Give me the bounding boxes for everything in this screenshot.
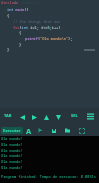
staticText: } bbox=[7, 47, 10, 52]
staticText: int main() bbox=[7, 7, 29, 12]
staticText: Executar bbox=[3, 128, 21, 133]
staticText: Ola mundo! bbox=[1, 136, 23, 141]
button[interactable]: Font size bbox=[23, 125, 34, 136]
button[interactable]: Executar bbox=[1, 127, 23, 134]
staticText: TAB bbox=[4, 113, 12, 118]
staticText: { bbox=[19, 30, 22, 35]
button[interactable]: TAB bbox=[2, 111, 14, 120]
staticText: } bbox=[19, 42, 22, 47]
staticText: Program finished. Tempo de execucao: 0.0… bbox=[1, 174, 96, 179]
staticText: Ola mundo! bbox=[1, 142, 23, 147]
staticText: A bbox=[26, 126, 32, 136]
button[interactable]: Open file bbox=[62, 125, 73, 136]
staticText: Ola mundo! bbox=[1, 153, 23, 158]
staticText: SEL bbox=[71, 113, 78, 118]
staticText: // the things that are bbox=[13, 19, 61, 24]
button[interactable]: Save bbox=[48, 125, 59, 136]
staticText: { bbox=[7, 13, 10, 18]
staticText: #include <stdio.h> bbox=[1, 0, 40, 5]
button[interactable]: Down bbox=[53, 112, 64, 123]
button[interactable]: Right bbox=[29, 112, 40, 123]
button[interactable]: Up bbox=[41, 112, 52, 123]
button[interactable]: SEL bbox=[69, 111, 80, 120]
button[interactable]: Menu bbox=[85, 111, 96, 122]
staticText: Ola mundo! bbox=[1, 148, 23, 153]
staticText: printf("Ola mundo\n"); bbox=[25, 36, 73, 41]
staticText: Ola mundo! bbox=[1, 165, 23, 170]
button[interactable]: Select text bbox=[35, 125, 46, 136]
staticText: Ola mundo! bbox=[1, 159, 23, 164]
staticText: for(int i=1; i<=5;i++) bbox=[13, 25, 61, 30]
button[interactable]: Fullscreen bbox=[76, 125, 87, 136]
button[interactable]: Left bbox=[17, 112, 28, 123]
